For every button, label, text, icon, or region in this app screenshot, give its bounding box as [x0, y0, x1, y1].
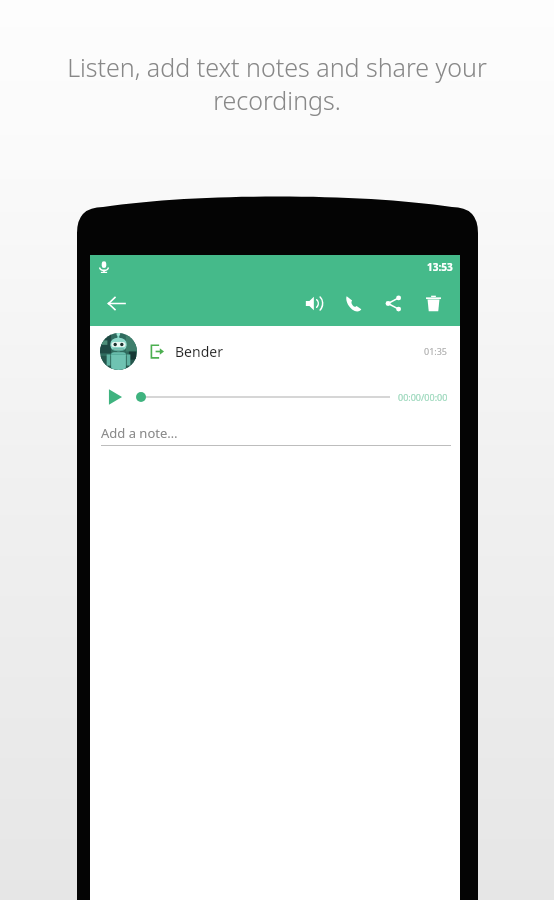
button[interactable]: Speaker [294, 284, 332, 322]
staticText: Add a note… [101, 424, 178, 442]
button[interactable]: Bender [90, 326, 460, 376]
staticText: Listen, add text notes and share your re… [40, 50, 514, 117]
button[interactable]: Add a note… [101, 424, 451, 446]
staticText: 01:35 [424, 345, 448, 357]
staticText: 00:00/00:00 [398, 391, 448, 403]
button[interactable]: Seek [136, 386, 390, 408]
button[interactable]: Call [334, 284, 372, 322]
button[interactable]: Back [97, 284, 135, 322]
button[interactable]: Delete [414, 284, 452, 322]
button[interactable]: Play [102, 384, 128, 410]
staticText: Bender [175, 342, 223, 361]
button[interactable]: Share [374, 284, 412, 322]
staticText: 13:53 [427, 260, 453, 274]
